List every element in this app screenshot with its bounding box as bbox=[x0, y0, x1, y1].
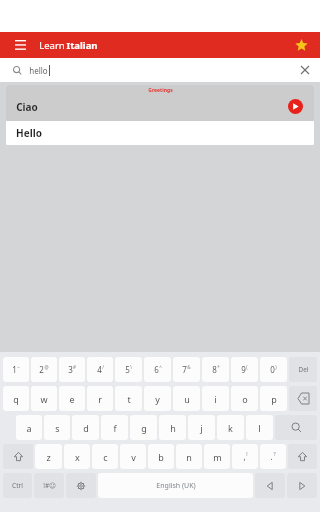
button[interactable]: Favorites bbox=[291, 35, 311, 55]
button[interactable]: Search bbox=[275, 415, 317, 440]
button[interactable]: 7 bbox=[173, 357, 200, 382]
staticText: Del bbox=[298, 365, 309, 374]
staticText: n bbox=[186, 451, 192, 463]
button[interactable]: t bbox=[115, 386, 142, 411]
staticText: z bbox=[46, 451, 51, 463]
staticText: ? bbox=[273, 451, 276, 458]
button[interactable]: English (UK) bbox=[98, 473, 253, 498]
staticText: c bbox=[103, 451, 108, 463]
button[interactable]: l bbox=[246, 415, 273, 440]
button[interactable]: Greetings bbox=[6, 85, 314, 145]
button[interactable]: Ctrl bbox=[3, 473, 32, 498]
staticText: Hello bbox=[16, 126, 42, 140]
button[interactable]: a bbox=[16, 415, 42, 440]
staticText: f bbox=[113, 422, 117, 434]
button[interactable]: u bbox=[173, 386, 200, 411]
button[interactable]: r bbox=[87, 386, 113, 411]
staticText: k bbox=[228, 422, 233, 434]
staticText: . bbox=[270, 451, 273, 462]
staticText: u bbox=[184, 393, 190, 405]
staticText: ( bbox=[246, 364, 248, 370]
staticText: o bbox=[242, 393, 248, 405]
button[interactable]: g bbox=[130, 415, 157, 440]
staticText: s bbox=[55, 422, 60, 434]
button[interactable]: 6 bbox=[144, 357, 171, 382]
button[interactable]: x bbox=[64, 444, 90, 469]
staticText: 3 bbox=[68, 364, 73, 375]
button[interactable]: Open navigation menu bbox=[10, 35, 30, 55]
button[interactable]: Shift bbox=[3, 444, 33, 469]
button[interactable]: f bbox=[101, 415, 128, 440]
staticText: ^ bbox=[159, 364, 162, 370]
button[interactable]: s bbox=[44, 415, 70, 440]
staticText: 1 bbox=[12, 364, 17, 375]
button[interactable]: n bbox=[176, 444, 202, 469]
staticText: y bbox=[155, 393, 160, 405]
staticText: 5 bbox=[125, 364, 130, 375]
button[interactable]: i bbox=[202, 386, 229, 411]
button[interactable]: Keyboard settings bbox=[66, 473, 96, 498]
button[interactable]: Del bbox=[289, 357, 317, 382]
staticText: Italian bbox=[66, 39, 98, 52]
staticText: hello bbox=[29, 65, 48, 76]
staticText: t bbox=[127, 393, 131, 405]
button[interactable]: 3 bbox=[59, 357, 85, 382]
button[interactable]: Play pronunciation bbox=[284, 95, 306, 117]
staticText: 0 bbox=[270, 364, 275, 375]
button[interactable]: Hello bbox=[6, 121, 314, 145]
button[interactable]: y bbox=[144, 386, 171, 411]
button[interactable]: j bbox=[188, 415, 215, 440]
staticText: Greetings bbox=[148, 87, 173, 94]
staticText: * bbox=[217, 364, 220, 370]
button[interactable]: . bbox=[260, 444, 286, 469]
staticText: 7 bbox=[182, 364, 187, 375]
button[interactable]: c bbox=[92, 444, 118, 469]
button[interactable]: z bbox=[35, 444, 62, 469]
staticText: j bbox=[200, 422, 203, 434]
button[interactable]: 8 bbox=[202, 357, 229, 382]
button[interactable]: q bbox=[3, 386, 29, 411]
button[interactable]: b bbox=[148, 444, 174, 469]
button[interactable]: , bbox=[232, 444, 258, 469]
staticText: p bbox=[271, 393, 277, 405]
staticText: a bbox=[26, 422, 32, 434]
staticText: v bbox=[131, 451, 136, 463]
button[interactable]: k bbox=[217, 415, 244, 440]
button[interactable]: 1 bbox=[3, 357, 29, 382]
button[interactable]: h bbox=[159, 415, 186, 440]
button[interactable]: Clear search bbox=[296, 61, 314, 79]
staticText: ) bbox=[275, 364, 277, 370]
button[interactable]: !#☺ bbox=[34, 473, 64, 498]
button[interactable]: 9 bbox=[231, 357, 258, 382]
staticText: ~ bbox=[17, 364, 20, 370]
button[interactable]: 4 bbox=[87, 357, 113, 382]
staticText: i bbox=[214, 393, 217, 405]
staticText: Learn bbox=[38, 39, 66, 52]
staticText: m bbox=[213, 451, 222, 463]
staticText: 2 bbox=[39, 364, 44, 375]
staticText: # bbox=[73, 364, 76, 370]
button[interactable]: Backspace bbox=[289, 386, 317, 411]
button[interactable]: 2 bbox=[31, 357, 57, 382]
button[interactable]: 5 bbox=[115, 357, 142, 382]
staticText: \ bbox=[130, 364, 132, 370]
button[interactable]: Shift bbox=[288, 444, 317, 469]
staticText: l bbox=[258, 422, 261, 434]
button[interactable]: hello bbox=[6, 61, 314, 79]
button[interactable]: o bbox=[231, 386, 258, 411]
button[interactable]: 0 bbox=[260, 357, 287, 382]
button[interactable]: m bbox=[204, 444, 230, 469]
staticText: 8 bbox=[212, 364, 217, 375]
button[interactable]: Move cursor right bbox=[287, 473, 317, 498]
staticText: Ciao bbox=[16, 100, 38, 114]
button[interactable]: Move cursor left bbox=[255, 473, 285, 498]
button[interactable]: d bbox=[72, 415, 99, 440]
staticText: w bbox=[40, 393, 48, 405]
button[interactable]: w bbox=[31, 386, 57, 411]
button[interactable]: p bbox=[260, 386, 287, 411]
staticText: ! bbox=[246, 451, 248, 458]
staticText: @ bbox=[44, 364, 49, 370]
staticText: 4 bbox=[97, 364, 102, 375]
button[interactable]: e bbox=[59, 386, 85, 411]
button[interactable]: v bbox=[120, 444, 146, 469]
